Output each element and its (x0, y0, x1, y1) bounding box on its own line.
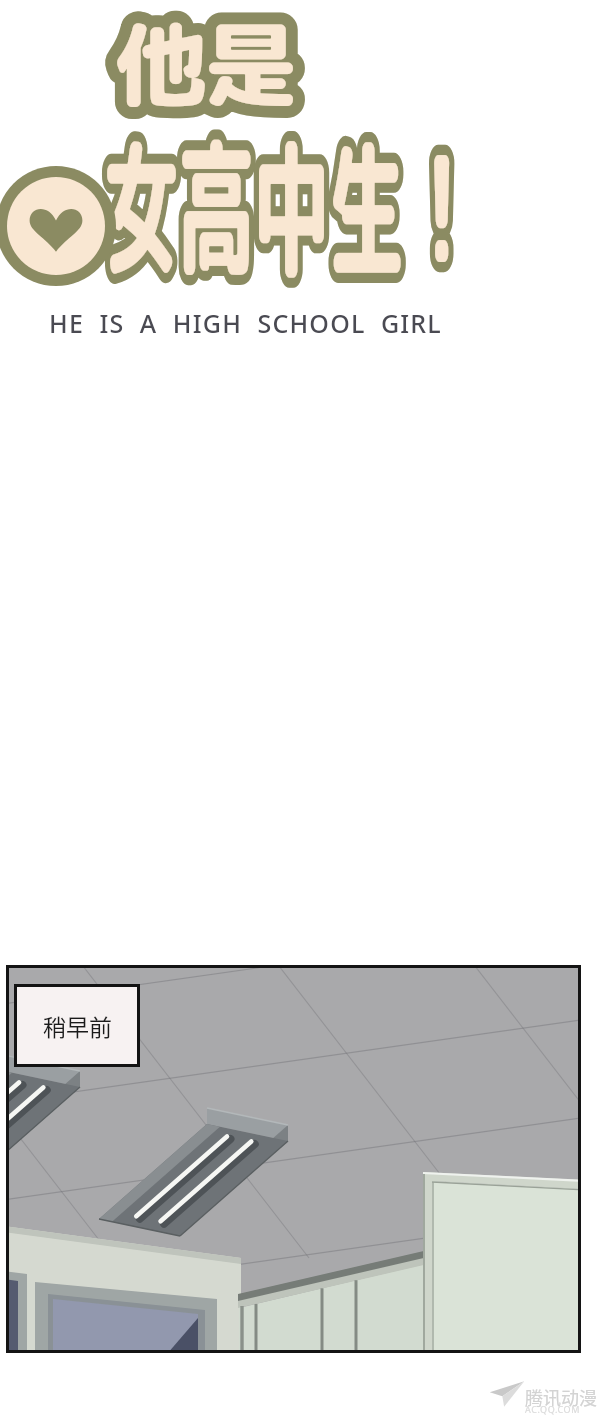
staticText: 腾讯动漫 (525, 1384, 597, 1410)
staticText: AC.QQ.COM (525, 1403, 580, 1415)
staticText: HE IS A HIGH SCHOOL GIRL (49, 306, 442, 340)
staticText: 稍早前 (43, 1009, 112, 1042)
